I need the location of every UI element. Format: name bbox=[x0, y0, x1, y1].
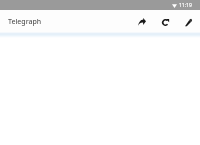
staticText: 11:19 bbox=[179, 2, 192, 9]
button[interactable]: Share bbox=[129, 11, 154, 33]
button[interactable]: Edit bbox=[177, 11, 200, 33]
staticText: Telegraph bbox=[8, 17, 42, 27]
button[interactable]: Refresh bbox=[154, 11, 177, 33]
